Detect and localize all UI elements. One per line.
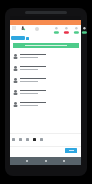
button[interactable] — [10, 86, 81, 98]
button[interactable]: Tool — [40, 138, 43, 141]
button[interactable] — [10, 74, 81, 86]
button[interactable] — [10, 98, 81, 110]
button[interactable]: Add — [26, 37, 29, 40]
button[interactable]: Tool — [26, 138, 29, 141]
button[interactable]: Tool — [19, 138, 22, 141]
button[interactable]: Tool — [12, 138, 15, 141]
button[interactable] — [10, 50, 81, 62]
button[interactable] — [65, 148, 77, 153]
button[interactable] — [11, 36, 25, 40]
button[interactable] — [13, 43, 79, 48]
button[interactable]: Tool — [33, 138, 36, 141]
button[interactable] — [10, 62, 81, 74]
